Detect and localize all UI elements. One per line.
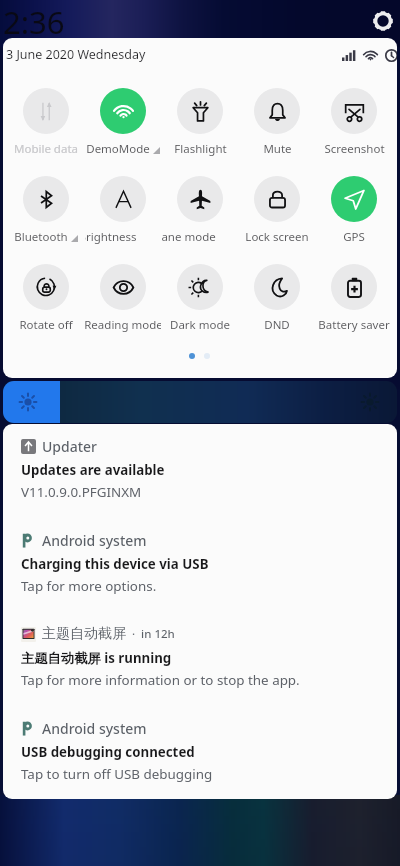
button[interactable] <box>331 264 377 310</box>
button[interactable] <box>177 88 223 134</box>
button[interactable]: 主题自动截屏 <box>3 612 397 706</box>
staticText: Updater <box>42 437 98 456</box>
button[interactable] <box>100 264 146 310</box>
staticText: Airplane mode <box>162 229 216 245</box>
staticText: 主题自动截屏 is running <box>21 649 172 667</box>
staticText: · in 12h <box>126 626 175 642</box>
button[interactable]: Settings <box>369 7 396 34</box>
staticText: Updates are available <box>21 461 165 479</box>
staticText: DemoMode <box>86 141 150 157</box>
staticText: Mute <box>263 141 292 157</box>
button[interactable]: Updater <box>3 424 397 518</box>
staticText: Rotate off <box>19 317 73 333</box>
button[interactable]: Android system <box>3 518 397 612</box>
staticText: 3 June 2020 Wednesday <box>6 46 146 63</box>
staticText: Tap for more options. <box>21 577 157 595</box>
staticText: Charging this device via USB <box>21 555 209 573</box>
staticText: DND <box>264 317 290 333</box>
button[interactable] <box>23 88 69 134</box>
staticText: Tap for more information or to stop the … <box>21 671 300 689</box>
staticText: Android system <box>42 531 147 550</box>
staticText: GPS <box>343 229 365 245</box>
staticText: Reading mode <box>85 317 161 333</box>
button[interactable] <box>23 264 69 310</box>
staticText: Flashlight <box>174 141 227 157</box>
staticText: Bluetooth <box>14 229 68 245</box>
staticText: Battery saver <box>318 317 390 333</box>
button[interactable] <box>100 176 146 222</box>
button[interactable] <box>254 88 300 134</box>
button[interactable] <box>254 264 300 310</box>
button[interactable] <box>331 88 377 134</box>
staticText: Lock screen <box>245 229 309 245</box>
staticText: Brightness <box>85 229 137 245</box>
button[interactable] <box>331 176 377 222</box>
button[interactable] <box>23 176 69 222</box>
staticText: 2:36 <box>3 1 65 43</box>
staticText: Screenshot <box>324 141 385 157</box>
button[interactable] <box>177 176 223 222</box>
staticText: USB debugging connected <box>21 743 195 761</box>
button[interactable] <box>254 176 300 222</box>
button[interactable]: Android system <box>3 706 397 799</box>
button[interactable]: Brightness slider <box>3 381 397 423</box>
staticText: Dark mode <box>170 317 230 333</box>
staticText: Android system <box>42 719 147 738</box>
staticText: Mobile data <box>14 141 78 157</box>
staticText: 主题自动截屏 <box>42 625 126 643</box>
staticText: V11.0.9.0.PFGINXM <box>21 483 142 501</box>
button[interactable] <box>177 264 223 310</box>
button[interactable] <box>100 88 146 134</box>
staticText: Tap to turn off USB debugging <box>21 765 213 783</box>
